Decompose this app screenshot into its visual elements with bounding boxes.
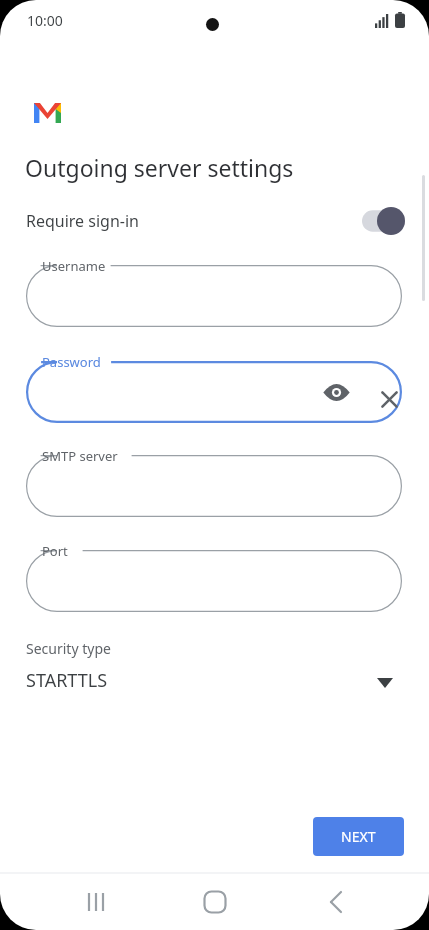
staticText: NEXT [341, 827, 376, 846]
button[interactable]: Username [26, 265, 402, 327]
button[interactable]: SMTP server [26, 455, 402, 517]
staticText: SMTP server [42, 447, 118, 465]
button[interactable]: Show password [320, 376, 353, 409]
button[interactable]: Security type [0, 634, 429, 706]
staticText: Outgoing server settings [25, 152, 294, 183]
staticText: Password [42, 353, 101, 371]
staticText: Port [42, 542, 68, 560]
button[interactable]: NEXT [313, 817, 404, 856]
staticText: Security type [26, 639, 111, 658]
button[interactable]: Clear [374, 384, 405, 415]
button[interactable]: Home [189, 881, 241, 923]
button[interactable]: Port [26, 550, 402, 612]
staticText: Require sign-in [26, 210, 139, 232]
button[interactable]: Back [310, 881, 362, 923]
button[interactable]: Password [26, 361, 402, 423]
staticText: STARTTLS [26, 668, 108, 693]
button[interactable]: Recent apps [70, 881, 122, 923]
staticText: 10:00 [27, 11, 63, 30]
staticText: Username [42, 257, 106, 275]
button[interactable]: Require sign-in [0, 199, 429, 243]
